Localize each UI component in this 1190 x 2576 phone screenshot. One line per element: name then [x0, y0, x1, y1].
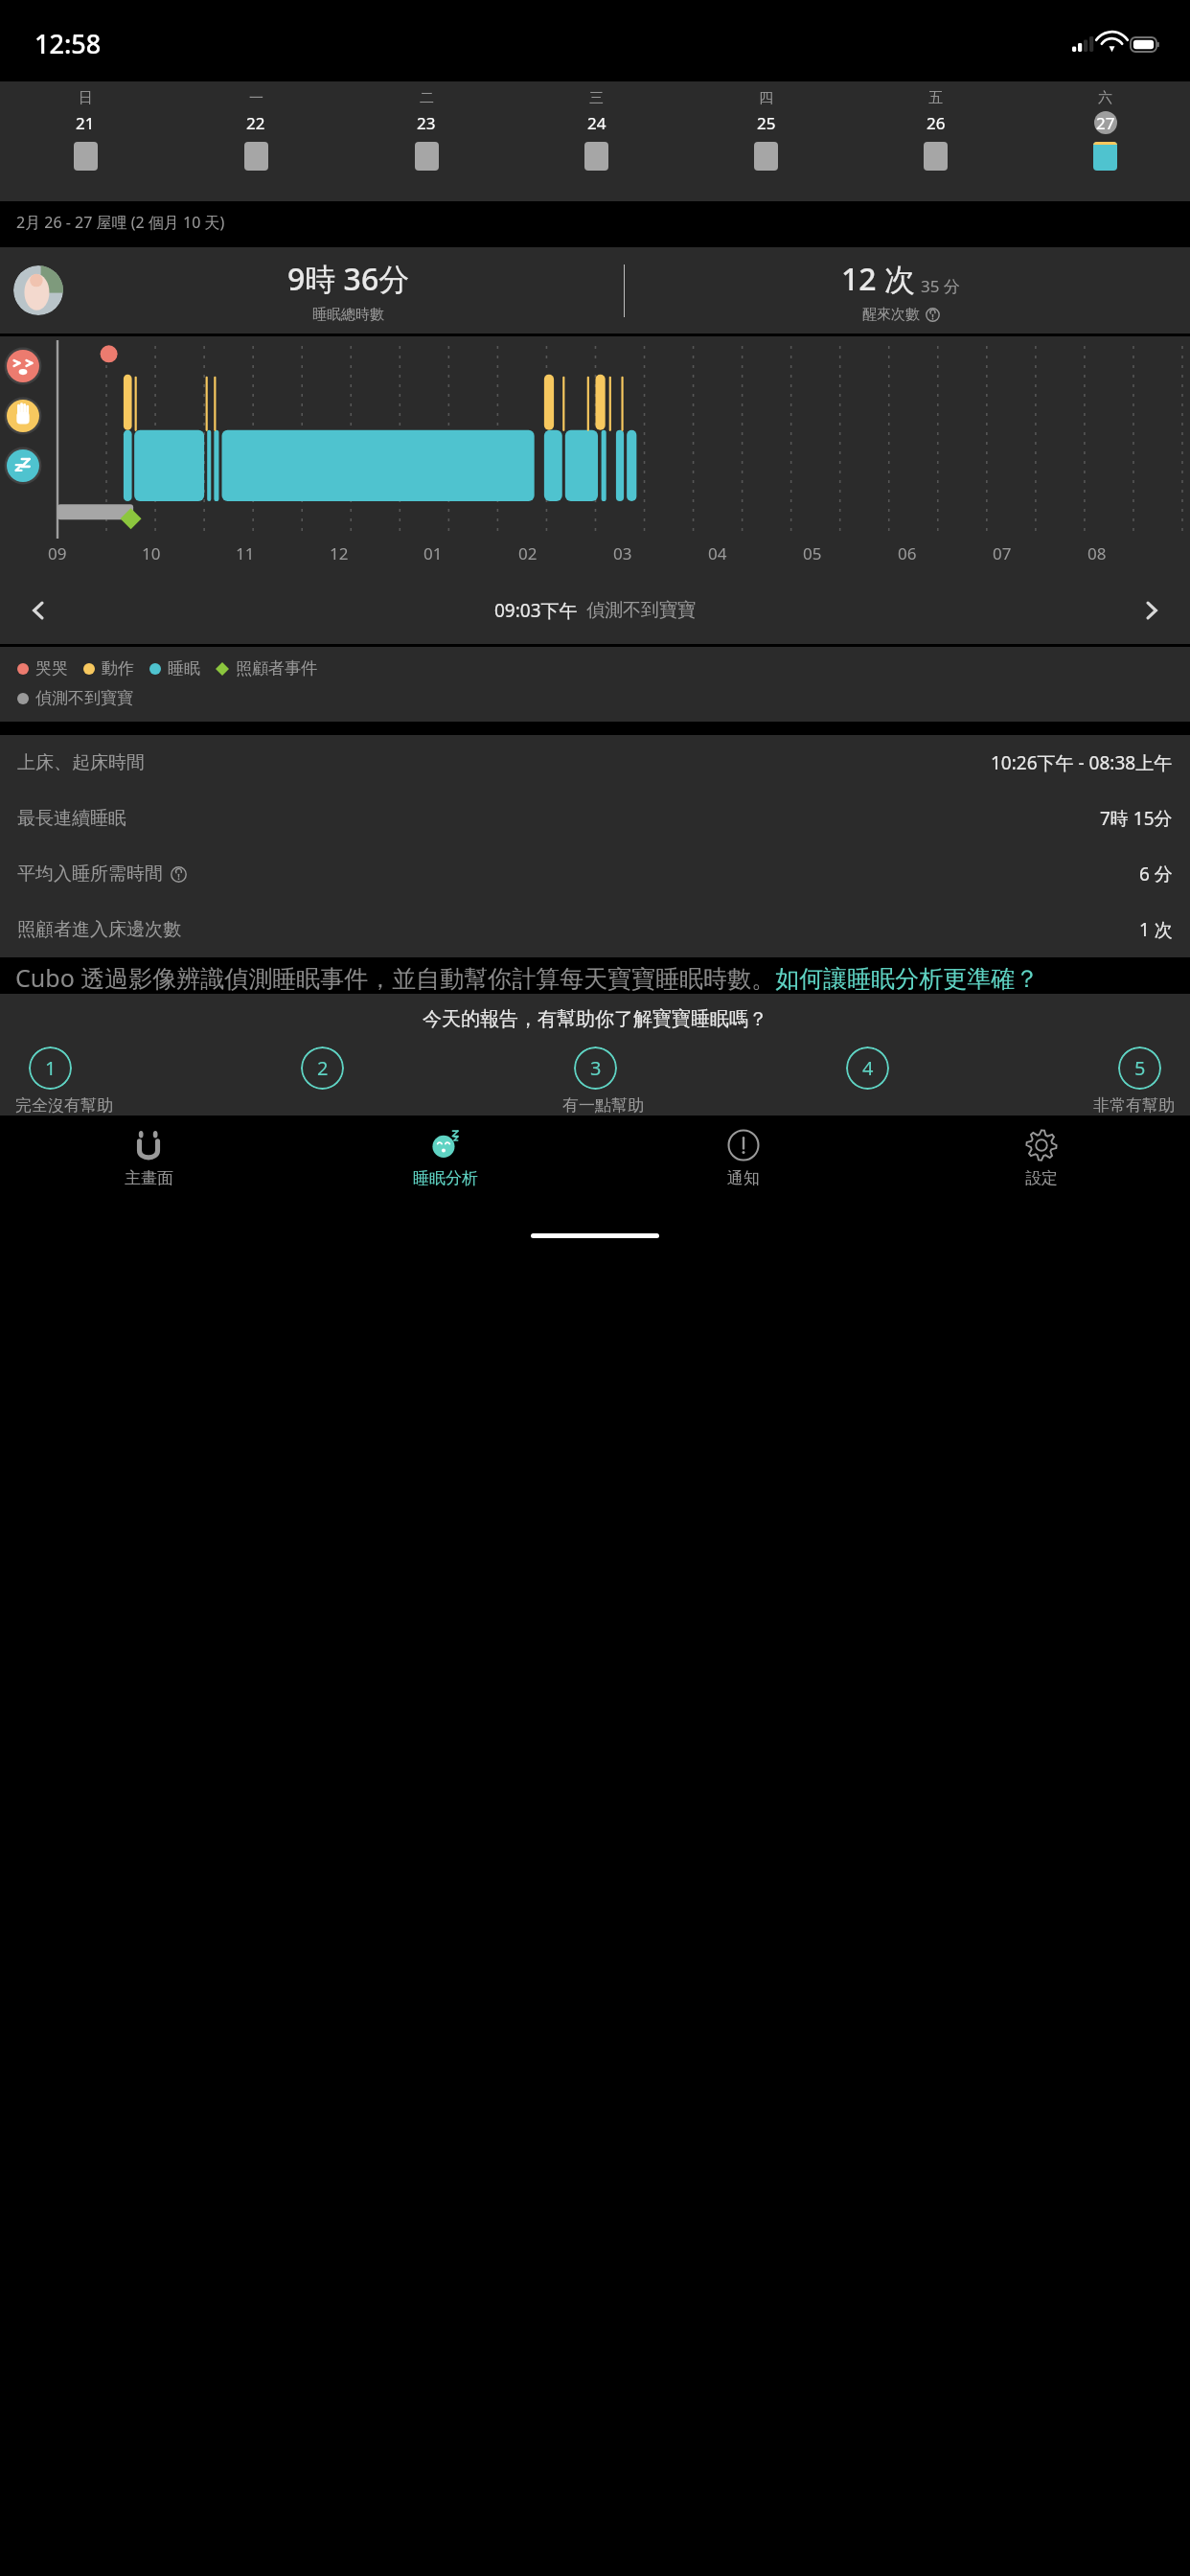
staticText: 12 次	[841, 258, 915, 300]
button[interactable]: 四	[681, 81, 851, 201]
staticText: 睡眠總時數	[312, 306, 384, 324]
staticText: 5	[1134, 1055, 1146, 1081]
staticText: 完全沒有幫助	[15, 1095, 113, 1115]
staticText: 9時 36分	[287, 258, 410, 300]
button[interactable]: 主畫面	[0, 1115, 297, 1216]
staticText: 11	[236, 542, 255, 564]
button[interactable]: 4	[846, 1046, 889, 1090]
staticText: 7時 15分	[1100, 806, 1173, 831]
staticText: 醒來次數	[862, 306, 920, 324]
button[interactable]: 三	[512, 81, 681, 201]
staticText: 有一點幫助	[562, 1095, 644, 1115]
staticText: 07	[993, 542, 1012, 564]
button[interactable]: 照顧者進入床邊次數	[0, 902, 1190, 957]
button[interactable]: 上床、起床時間	[0, 735, 1190, 791]
staticText: 哭哭	[35, 658, 68, 678]
staticText: 6 分	[1139, 862, 1173, 886]
staticText: 2	[317, 1055, 329, 1081]
staticText: 08	[1087, 542, 1107, 564]
staticText: 27	[1096, 112, 1115, 134]
button[interactable]: 一	[171, 81, 341, 201]
staticText: 10	[142, 542, 161, 564]
button[interactable]: 5	[1118, 1046, 1161, 1090]
staticText: 10:26下午 - 08:38上午	[991, 750, 1173, 775]
staticText: 六	[1098, 89, 1112, 107]
button[interactable]: 最長連續睡眠	[0, 791, 1190, 846]
button[interactable]: 2	[301, 1046, 344, 1090]
staticText: 睡眠	[168, 658, 200, 678]
button[interactable]: 下一個事件	[1113, 577, 1190, 644]
staticText: 日	[79, 89, 93, 107]
staticText: 1	[45, 1055, 57, 1081]
staticText: 35 分	[921, 275, 960, 297]
button[interactable]: 六	[1020, 81, 1190, 201]
staticText: 平均入睡所需時間	[17, 862, 163, 885]
staticText: 09:03下午	[494, 598, 578, 623]
staticText: 05	[803, 542, 822, 564]
staticText: 睡眠分析	[413, 1168, 478, 1188]
staticText: 21	[76, 112, 95, 134]
staticText: 上床、起床時間	[17, 751, 145, 774]
staticText: 02	[518, 542, 538, 564]
staticText: 4	[862, 1055, 874, 1081]
button[interactable]: 3	[574, 1046, 617, 1090]
staticText: 25	[757, 112, 776, 134]
staticText: 四	[759, 89, 773, 107]
staticText: 今天的報告，有幫助你了解寶寶睡眠嗎？	[423, 1007, 767, 1031]
staticText: 五	[928, 89, 943, 107]
button[interactable]: 五	[851, 81, 1020, 201]
staticText: 3	[590, 1055, 602, 1081]
button[interactable]: 睡眠分析	[297, 1115, 594, 1216]
staticText: 偵測不到寶寶	[35, 688, 133, 708]
staticText: 最長連續睡眠	[17, 807, 126, 830]
staticText: 二	[420, 89, 434, 107]
staticText: 03	[613, 542, 632, 564]
button[interactable]: 二	[341, 81, 512, 201]
button[interactable]: 設定	[892, 1115, 1190, 1216]
staticText: 24	[587, 112, 606, 134]
staticText: 偵測不到寶寶	[586, 599, 696, 622]
staticText: 通知	[727, 1168, 760, 1188]
staticText: 09	[48, 542, 67, 564]
button[interactable]: 1	[29, 1046, 72, 1090]
other: 說明	[926, 308, 940, 322]
staticText: 1 次	[1139, 917, 1173, 942]
staticText: 主畫面	[125, 1168, 173, 1188]
staticText: 26	[927, 112, 946, 134]
button[interactable]: 上一個事件	[0, 577, 77, 644]
staticText: 12:58	[34, 26, 102, 61]
staticText: 22	[246, 112, 265, 134]
staticText: 一	[249, 89, 263, 107]
staticText: 2月 26 - 27 屋哩 (2 個月 10 天)	[16, 212, 225, 233]
button[interactable]: 日	[0, 81, 171, 201]
button[interactable]: 通知	[594, 1115, 892, 1216]
staticText: 非常有幫助	[1093, 1095, 1175, 1115]
staticText: 設定	[1025, 1168, 1058, 1188]
staticText: 06	[898, 542, 917, 564]
staticText: 12	[330, 542, 349, 564]
staticText: 04	[708, 542, 727, 564]
staticText: 照顧者事件	[236, 658, 317, 678]
staticText: 動作	[102, 658, 134, 678]
button[interactable]: 平均入睡所需時間	[0, 846, 1190, 902]
staticText: 01	[423, 542, 443, 564]
staticText: Cubo 透過影像辨識偵測睡眠事件，並自動幫你計算每天寶寶睡眠時數。如何讓睡眠分…	[15, 961, 1040, 994]
other: 說明	[171, 866, 187, 883]
staticText: 23	[417, 112, 436, 134]
staticText: 三	[589, 89, 604, 107]
staticText: 照顧者進入床邊次數	[17, 918, 181, 941]
